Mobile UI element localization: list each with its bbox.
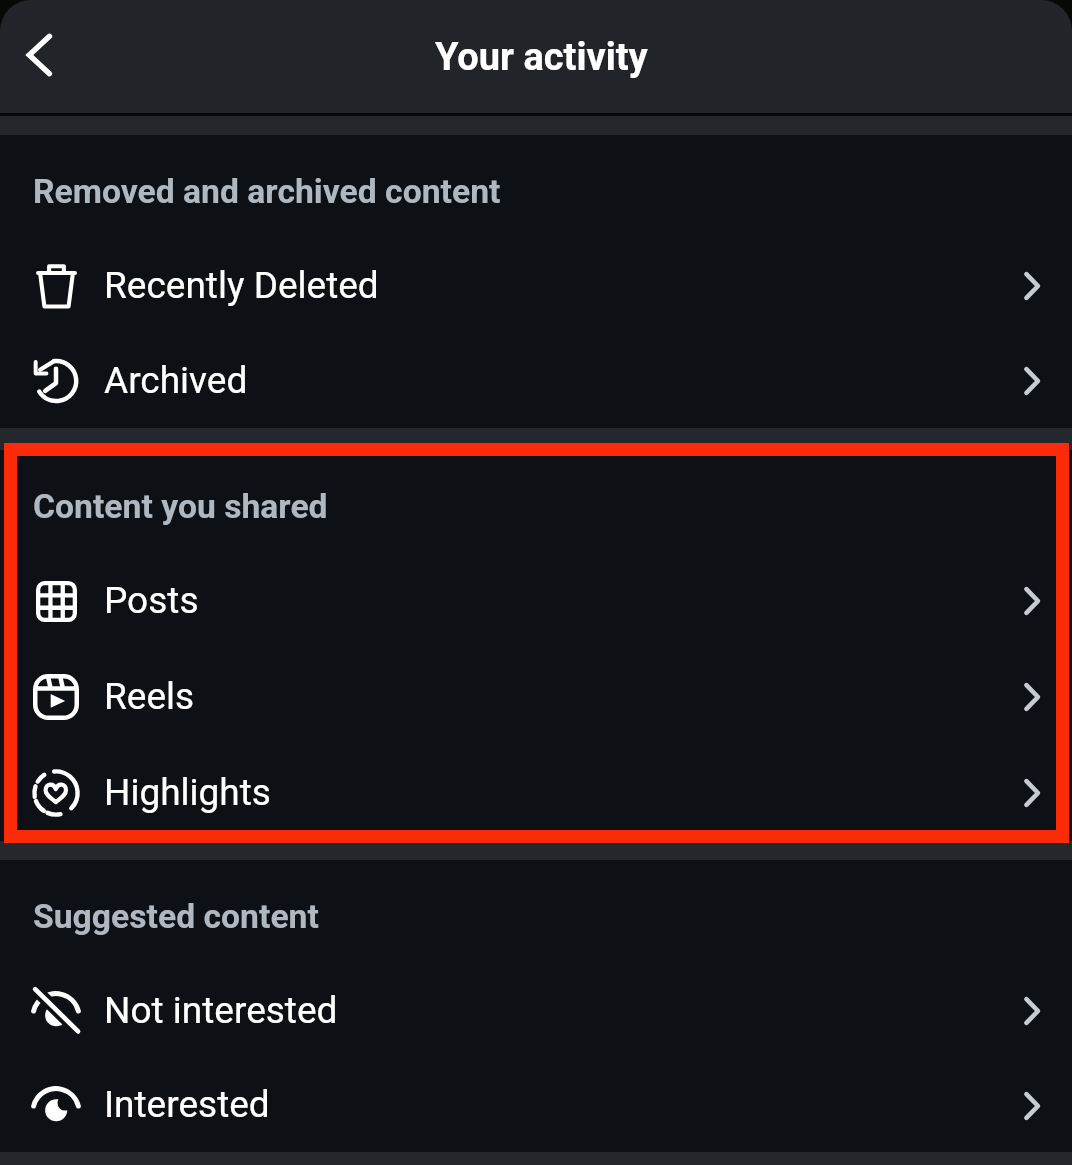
staticText: Suggested content: [33, 897, 319, 936]
button[interactable]: Reels: [0, 649, 1072, 745]
staticText: Recently Deleted: [104, 264, 379, 307]
staticText: Not interested: [104, 989, 338, 1032]
button[interactable]: Interested: [0, 1059, 1072, 1152]
button[interactable]: Back: [4, 18, 78, 92]
staticText: Archived: [104, 359, 248, 402]
staticText: Posts: [104, 579, 199, 622]
button[interactable]: Archived: [0, 334, 1072, 428]
button[interactable]: Not interested: [0, 963, 1072, 1059]
staticText: Removed and archived content: [33, 172, 501, 211]
button[interactable]: Posts: [0, 553, 1072, 649]
staticText: Your activity: [435, 35, 648, 80]
staticText: Content you shared: [33, 487, 328, 526]
staticText: Interested: [104, 1083, 270, 1126]
staticText: Reels: [104, 675, 195, 718]
button[interactable]: Highlights: [0, 745, 1072, 841]
button[interactable]: Recently Deleted: [0, 238, 1072, 334]
staticText: Highlights: [104, 771, 271, 814]
